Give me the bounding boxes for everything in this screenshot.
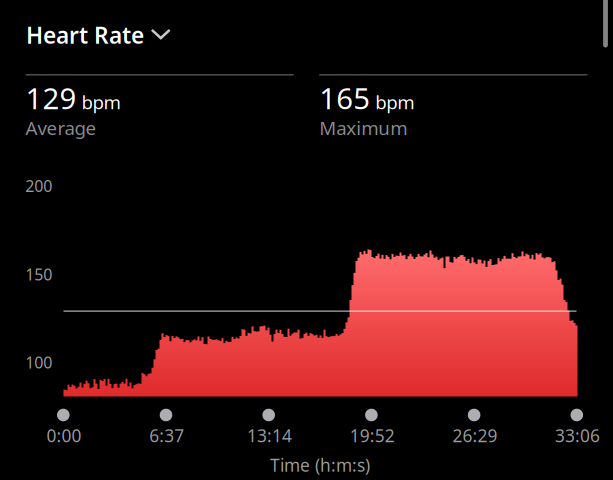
staticText: 129 xyxy=(25,78,76,117)
staticText: 0:00 xyxy=(47,424,82,447)
staticText: Time (h:m:s) xyxy=(270,453,370,476)
staticText: bpm xyxy=(375,90,414,114)
staticText: 13:14 xyxy=(247,424,292,447)
staticText: Average xyxy=(25,115,96,140)
staticText: bpm xyxy=(81,90,120,114)
staticText: 200 xyxy=(25,175,52,196)
staticText: 150 xyxy=(25,264,52,285)
staticText: 33:06 xyxy=(555,424,600,447)
staticText: 6:37 xyxy=(149,424,184,447)
staticText: 26:29 xyxy=(452,424,497,447)
staticText: Maximum xyxy=(319,115,407,140)
staticText: 100 xyxy=(25,352,52,373)
staticText: 19:52 xyxy=(350,424,395,447)
button[interactable]: Heart Rate xyxy=(0,0,613,60)
staticText: 165 xyxy=(319,78,370,117)
staticText: Heart Rate xyxy=(26,20,144,50)
